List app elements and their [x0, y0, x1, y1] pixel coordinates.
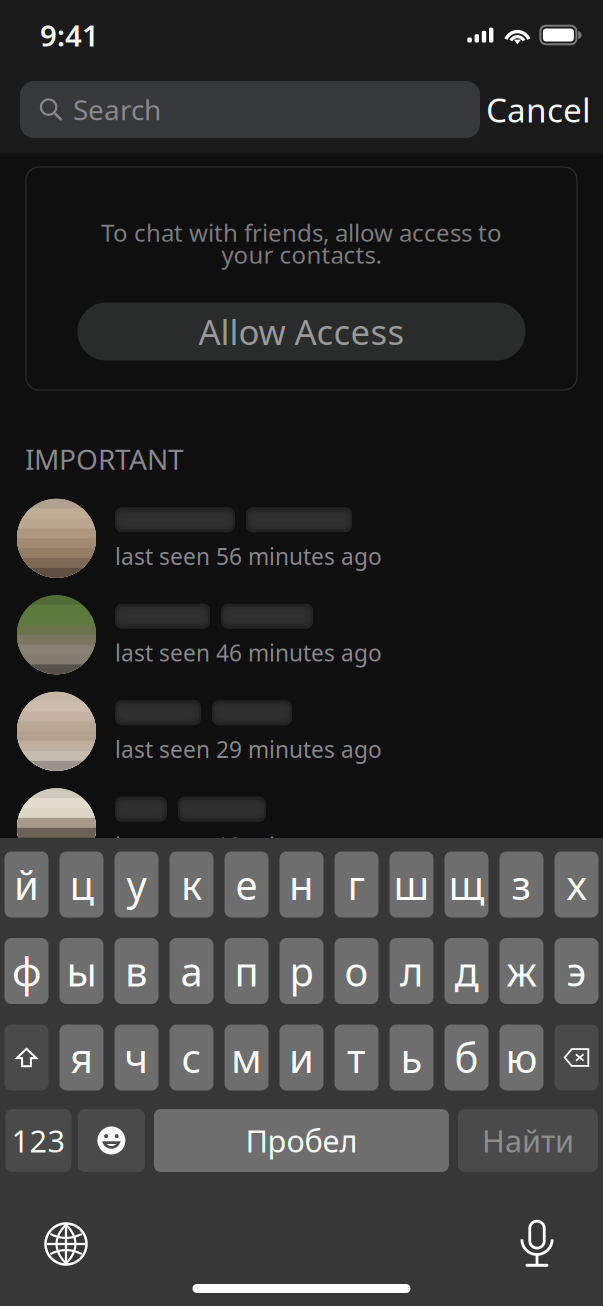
- button[interactable]: у: [114, 851, 158, 917]
- staticText: я: [70, 1031, 93, 1084]
- button[interactable]: в: [114, 938, 158, 1004]
- staticText: у: [126, 858, 146, 911]
- button[interactable]: Delete: [554, 1024, 598, 1090]
- button[interactable]: п: [224, 938, 268, 1004]
- button[interactable]: Allow Access: [77, 302, 525, 360]
- staticText: п: [234, 944, 258, 997]
- button[interactable]: й: [4, 851, 48, 917]
- staticText: ш: [393, 858, 429, 911]
- button[interactable]: г: [334, 851, 378, 917]
- staticText: з: [511, 858, 531, 911]
- button[interactable]: ь: [389, 1024, 433, 1090]
- staticText: 9:41: [40, 15, 99, 54]
- staticText: л: [400, 944, 423, 997]
- button[interactable]: last seen 12 minutes ago: [0, 779, 603, 876]
- staticText: 123: [11, 1120, 65, 1161]
- button[interactable]: ц: [59, 851, 103, 917]
- button[interactable]: 123: [5, 1109, 71, 1172]
- button[interactable]: з: [499, 851, 543, 917]
- staticText: ц: [69, 858, 93, 911]
- staticText: To chat with friends, allow access to: [101, 217, 502, 248]
- staticText: е: [235, 858, 257, 911]
- button[interactable]: last seen 56 minutes ago: [0, 490, 603, 586]
- staticText: Пробел: [245, 1120, 357, 1161]
- button[interactable]: л: [389, 938, 433, 1004]
- staticText: р: [289, 944, 313, 997]
- staticText: б: [454, 1031, 478, 1084]
- staticText: а: [180, 944, 202, 997]
- button[interactable]: х: [554, 851, 598, 917]
- staticText: х: [566, 858, 586, 911]
- button[interactable]: Dictation: [506, 1217, 568, 1271]
- staticText: last seen 29 minutes ago: [115, 734, 382, 764]
- button[interactable]: н: [279, 851, 323, 917]
- button[interactable]: и: [279, 1024, 323, 1090]
- staticText: Cancel: [486, 87, 591, 132]
- button[interactable]: Shift: [4, 1024, 48, 1090]
- staticText: ф: [12, 944, 41, 997]
- button[interactable]: я: [59, 1024, 103, 1090]
- button[interactable]: с: [169, 1024, 213, 1090]
- button[interactable]: р: [279, 938, 323, 1004]
- button[interactable]: б: [444, 1024, 488, 1090]
- staticText: IMPORTANT: [25, 440, 184, 478]
- staticText: Allow Access: [198, 308, 404, 354]
- staticText: с: [181, 1031, 201, 1084]
- staticText: т: [347, 1031, 366, 1084]
- staticText: м: [231, 1031, 262, 1084]
- button[interactable]: ю: [499, 1024, 543, 1090]
- staticText: ы: [66, 944, 96, 997]
- button[interactable]: о: [334, 938, 378, 1004]
- staticText: ч: [124, 1031, 148, 1084]
- button[interactable]: ж: [499, 938, 543, 1004]
- staticText: your contacts.: [221, 239, 381, 270]
- button[interactable]: Next keyboard: [35, 1217, 97, 1271]
- staticText: Search: [73, 91, 161, 128]
- staticText: н: [289, 858, 314, 911]
- staticText: ю: [505, 1031, 537, 1084]
- staticText: г: [347, 858, 365, 911]
- button[interactable]: last seen 46 minutes ago: [0, 586, 603, 683]
- button[interactable]: щ: [444, 851, 488, 917]
- staticText: щ: [448, 858, 484, 911]
- staticText: в: [125, 944, 148, 997]
- button[interactable]: т: [334, 1024, 378, 1090]
- staticText: ь: [400, 1031, 422, 1084]
- staticText: й: [14, 858, 39, 911]
- button[interactable]: э: [554, 938, 598, 1004]
- button[interactable]: а: [169, 938, 213, 1004]
- button[interactable]: Cancel: [480, 81, 597, 138]
- staticText: к: [181, 858, 202, 911]
- button[interactable]: к: [169, 851, 213, 917]
- staticText: Найти: [482, 1120, 574, 1161]
- staticText: ж: [506, 944, 536, 997]
- staticText: last seen 56 minutes ago: [115, 541, 382, 571]
- button[interactable]: ч: [114, 1024, 158, 1090]
- staticText: и: [289, 1031, 314, 1084]
- button[interactable]: Пробел: [154, 1109, 449, 1172]
- button[interactable]: Найти: [458, 1109, 598, 1172]
- staticText: last seen 46 minutes ago: [115, 638, 382, 668]
- button[interactable]: ф: [4, 938, 48, 1004]
- button[interactable]: Emoji: [78, 1109, 145, 1172]
- button[interactable]: ш: [389, 851, 433, 917]
- button[interactable]: ы: [59, 938, 103, 1004]
- button[interactable]: last seen 29 minutes ago: [0, 683, 603, 779]
- staticText: last seen 12 minutes ago: [115, 831, 382, 861]
- button[interactable]: е: [224, 851, 268, 917]
- button[interactable]: д: [444, 938, 488, 1004]
- staticText: д: [454, 944, 478, 997]
- staticText: э: [566, 944, 586, 997]
- button[interactable]: м: [224, 1024, 268, 1090]
- staticText: о: [344, 944, 368, 997]
